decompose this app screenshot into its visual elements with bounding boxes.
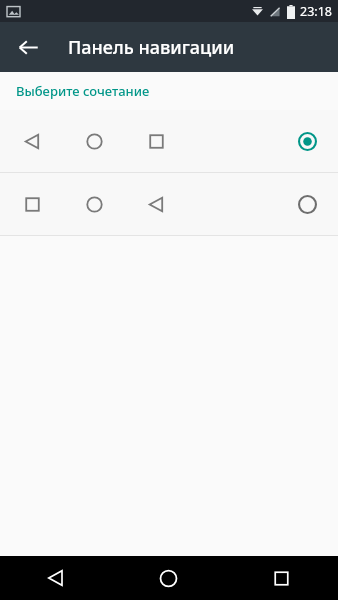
button[interactable]: Select combination — [0, 173, 338, 235]
button[interactable]: Recents — [225, 556, 338, 600]
staticText: Выберите сочетание — [16, 82, 150, 100]
button[interactable]: Back — [6, 25, 50, 69]
button[interactable]: Select combination — [286, 120, 328, 162]
button[interactable]: Select combination — [0, 110, 338, 172]
button[interactable]: Home — [112, 556, 225, 600]
staticText: Панель навигации — [68, 35, 235, 60]
button[interactable]: Back — [0, 556, 112, 600]
button[interactable]: Select combination — [286, 183, 328, 225]
staticText: 23:18 — [300, 3, 332, 20]
